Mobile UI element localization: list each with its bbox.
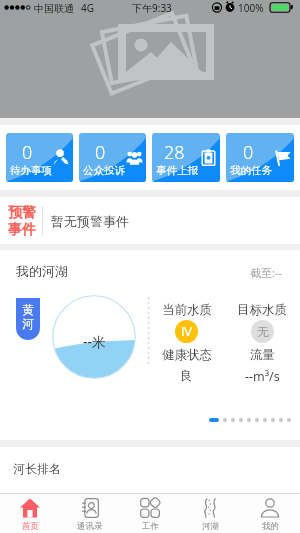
staticText: 中国联通 [34, 2, 74, 15]
staticText: 下午9:33 [132, 1, 172, 15]
staticText: 工作 [142, 521, 159, 532]
staticText: 良 [180, 368, 193, 384]
button[interactable]: 河湖 [180, 494, 240, 533]
staticText: 4G [81, 1, 94, 15]
button[interactable]: 我的 [240, 494, 300, 533]
staticText: 流量 [250, 347, 275, 363]
staticText: 健康状态 [162, 347, 212, 363]
staticText: 目标水质 [237, 302, 287, 318]
staticText: 通讯录 [77, 521, 103, 532]
staticText: --m³/s [245, 368, 280, 385]
staticText: 0 [243, 140, 254, 165]
staticText: 首页 [22, 521, 39, 532]
button[interactable]: 0 [79, 133, 146, 182]
button[interactable]: 0 [6, 133, 73, 182]
staticText: 0 [22, 140, 33, 165]
staticText: 我的河湖 [16, 263, 68, 279]
staticText: 我的 [262, 521, 279, 532]
staticText: 28 [164, 140, 185, 165]
staticText: 我的任务 [230, 164, 272, 177]
staticText: 100% [238, 1, 264, 15]
button[interactable]: 28 [152, 133, 220, 182]
staticText: 当前水质 [162, 302, 212, 318]
staticText: Ⅳ [181, 325, 193, 339]
staticText: 河湖 [202, 521, 219, 532]
staticText: 事件上报 [156, 164, 198, 177]
staticText: 0 [95, 140, 106, 165]
button[interactable]: 0 [226, 133, 294, 182]
staticText: 预警 事件 [8, 204, 36, 238]
staticText: 河长排名 [13, 461, 61, 476]
button[interactable]: 首页 [0, 494, 60, 533]
staticText: 截至:-- [250, 265, 283, 280]
button[interactable]: 工作 [120, 494, 180, 533]
button[interactable]: 通讯录 [60, 494, 120, 533]
staticText: --米 [83, 332, 107, 351]
staticText: 黄 河 [22, 302, 34, 332]
staticText: 无 [257, 324, 269, 339]
staticText: 暂无预警事件 [51, 213, 129, 229]
staticText: 公众投诉 [83, 164, 125, 177]
staticText: 待办事项 [10, 164, 52, 177]
